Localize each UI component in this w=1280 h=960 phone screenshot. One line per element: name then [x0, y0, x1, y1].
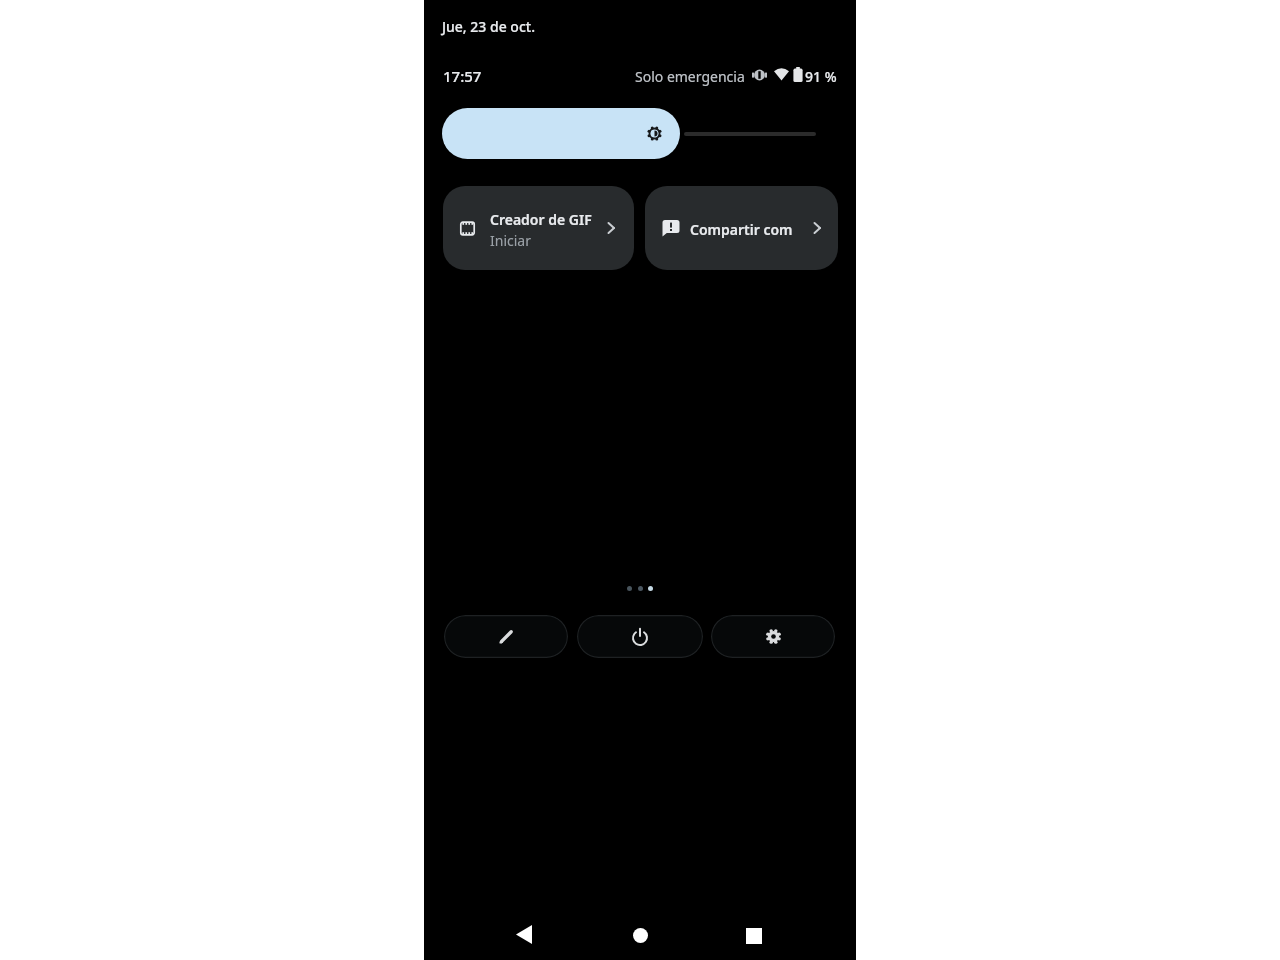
- staticText: Iniciar: [490, 231, 531, 250]
- button[interactable]: Creador de GIF: [443, 186, 634, 270]
- staticText: 17:57: [443, 66, 482, 86]
- button[interactable]: Compartir com: [645, 186, 838, 270]
- button[interactable]: [577, 615, 703, 658]
- staticText: 91 %: [805, 67, 837, 86]
- button[interactable]: [444, 615, 568, 658]
- button[interactable]: [514, 922, 536, 947]
- staticText: Creador de GIF: [490, 210, 592, 229]
- button[interactable]: [711, 615, 835, 658]
- button[interactable]: [442, 108, 680, 159]
- staticText: Jue, 23 de oct.: [442, 17, 535, 36]
- staticText: Solo emergencia: [635, 67, 745, 86]
- staticText: Compartir com: [690, 220, 793, 239]
- button[interactable]: [633, 928, 648, 943]
